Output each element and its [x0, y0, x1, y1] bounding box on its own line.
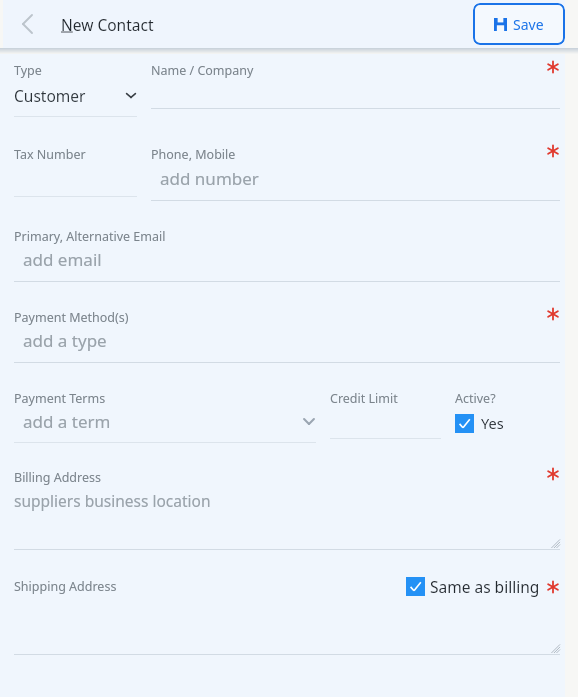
staticText: Same as billing	[430, 576, 540, 597]
button[interactable]: Primary, Alternative Email	[14, 201, 560, 282]
staticText: Payment Terms	[14, 390, 106, 407]
staticText: Billing Address	[14, 469, 101, 486]
button[interactable]: Payment Method(s)	[14, 282, 560, 363]
staticText: add a term	[23, 410, 111, 433]
staticText: add number	[160, 167, 259, 190]
staticText: Primary, Alternative Email	[14, 228, 166, 245]
staticText: suppliers business location	[14, 490, 211, 511]
button[interactable]: Name / Company	[151, 54, 560, 109]
button[interactable]: Back	[11, 8, 43, 40]
staticText: Tax Number	[14, 146, 86, 163]
staticText: add a type	[23, 329, 107, 352]
staticText: New Contact	[61, 14, 154, 35]
staticText: add email	[23, 248, 102, 271]
staticText: Credit Limit	[330, 390, 398, 407]
staticText: Shipping Address	[14, 578, 117, 595]
button[interactable]: Save	[473, 3, 565, 45]
staticText: Active?	[455, 390, 496, 407]
staticText: Name / Company	[151, 62, 254, 79]
button[interactable]: Payment Terms	[14, 363, 316, 443]
staticText: Customer	[14, 85, 86, 106]
staticText: Phone, Mobile	[151, 146, 236, 163]
button[interactable]: Type	[14, 54, 137, 117]
button[interactable]: Phone, Mobile	[151, 117, 560, 201]
staticText: Yes	[481, 413, 504, 433]
staticText: Save	[513, 15, 544, 34]
button[interactable]: Shipping Address	[14, 550, 560, 655]
button[interactable]: Same as billing	[406, 576, 540, 597]
button[interactable]: Billing Address	[14, 443, 560, 550]
button[interactable]: Credit Limit	[330, 363, 441, 439]
staticText: Payment Method(s)	[14, 309, 129, 326]
button[interactable]: Yes	[455, 413, 504, 433]
staticText: Type	[14, 62, 42, 79]
button[interactable]: Tax Number	[14, 117, 137, 197]
